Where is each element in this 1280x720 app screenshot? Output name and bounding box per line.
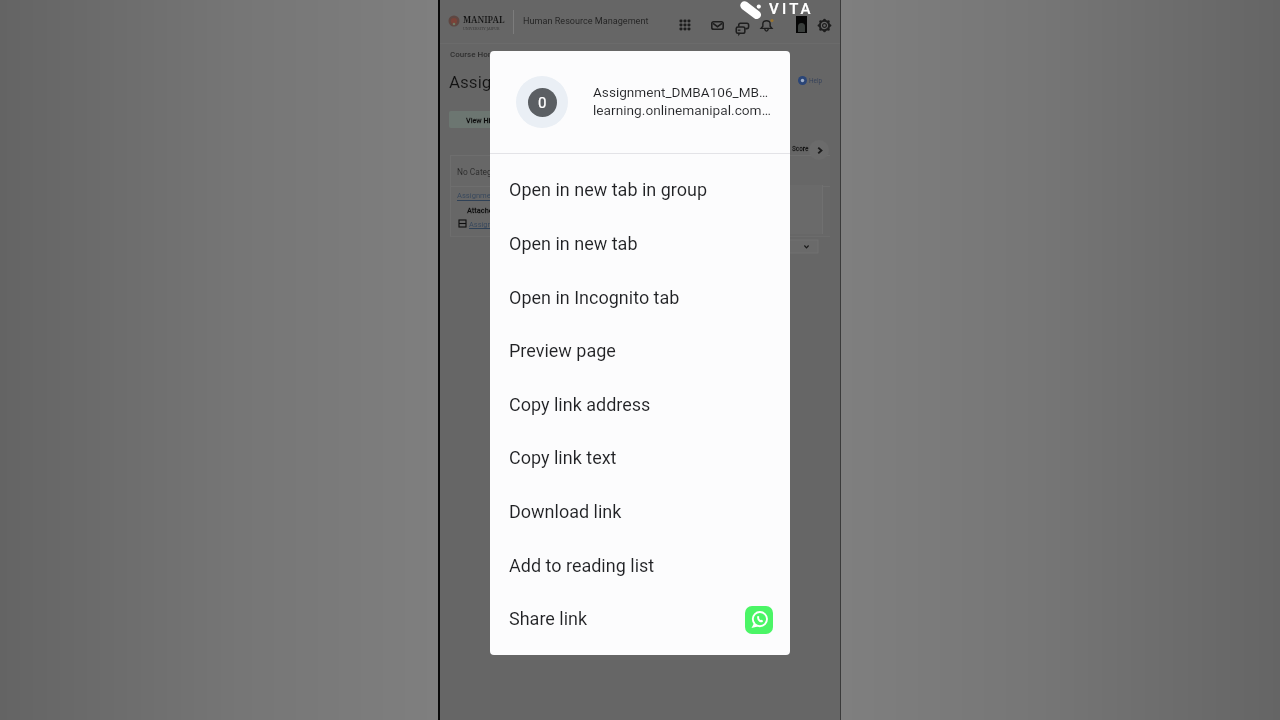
staticText: Attached Files — [467, 206, 515, 215]
staticText: Download link — [509, 501, 622, 522]
button[interactable]: Messages — [730, 13, 754, 37]
staticText: VITA — [769, 0, 814, 18]
button[interactable]: Select — [767, 240, 818, 253]
staticText: Human Resource Management — [523, 16, 649, 27]
button[interactable]: View History — [449, 111, 523, 128]
button[interactable]: Help — [798, 76, 823, 85]
button[interactable]: Share link — [490, 591, 790, 645]
staticText: MANIPAL — [463, 14, 505, 26]
staticText: Copy link text — [509, 447, 617, 468]
staticText: Score — [792, 145, 809, 153]
staticText: Assignment_DMBA106_MB… — [593, 84, 769, 100]
staticText: Assignment_DMBA106_MB — [469, 220, 560, 229]
button[interactable]: Open in Incognito tab — [490, 270, 790, 324]
staticText: Assignment 1 - Set 1 — [457, 191, 527, 200]
button[interactable]: Settings — [812, 13, 836, 37]
button[interactable]: Copy link text — [490, 430, 790, 484]
button[interactable]: Share via WhatsApp — [745, 606, 773, 634]
button[interactable]: Preview page — [490, 323, 790, 377]
button[interactable]: Notifications — [754, 13, 778, 37]
button[interactable]: Copy link address — [490, 377, 790, 431]
staticText: Copy link address — [509, 394, 651, 415]
button[interactable]: Download link — [490, 484, 790, 538]
staticText: Help — [809, 77, 823, 85]
staticText: Open in new tab in group — [509, 179, 708, 200]
button[interactable]: Add to reading list — [490, 538, 790, 592]
staticText: Open in Incognito tab — [509, 287, 680, 308]
button[interactable]: Open in new tab in group — [490, 162, 790, 216]
button[interactable]: Next — [809, 140, 829, 160]
staticText: Add to reading list — [509, 555, 655, 576]
staticText: Assignments — [449, 72, 549, 92]
button[interactable]: Mail — [705, 13, 729, 37]
staticText: UNIVERSITY JAIPUR — [463, 26, 500, 31]
staticText: 0 — [538, 94, 547, 112]
button[interactable]: Apps — [673, 13, 697, 37]
staticText: No Category — [457, 167, 504, 177]
staticText: Course Home / Assignments — [450, 50, 554, 59]
staticText: learning.onlinemanipal.com… — [593, 102, 771, 118]
staticText: Open in new tab — [509, 233, 638, 254]
button[interactable]: Open in new tab — [490, 216, 790, 270]
staticText: Preview page — [509, 340, 616, 361]
staticText: View History — [466, 116, 507, 124]
button[interactable]: Profile — [796, 16, 807, 33]
staticText: Share link — [509, 608, 588, 629]
